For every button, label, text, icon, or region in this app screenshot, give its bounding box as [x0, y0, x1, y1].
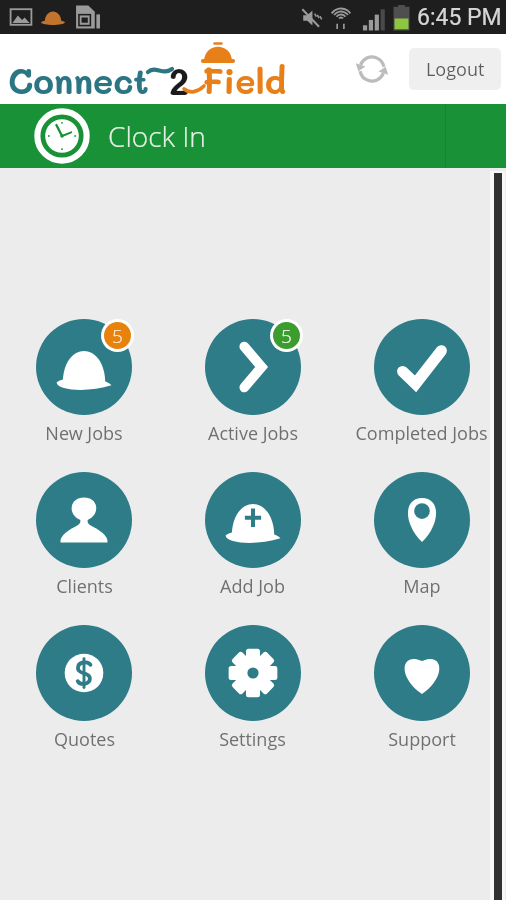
staticText: 6:45 PM: [417, 4, 502, 31]
staticText: Field: [202, 58, 287, 102]
button[interactable]: Add Job: [168, 472, 337, 599]
staticText: Clients: [56, 574, 113, 599]
staticText: Clock In: [108, 117, 206, 155]
staticText: Settings: [219, 727, 286, 752]
staticText: Active Jobs: [208, 421, 298, 446]
button[interactable]: Support: [337, 625, 506, 752]
staticText: Quotes: [54, 727, 115, 752]
button[interactable]: Settings: [168, 625, 337, 752]
staticText: Connect: [8, 58, 149, 102]
button[interactable]: Completed Jobs: [337, 319, 506, 446]
staticText: 5: [112, 323, 123, 349]
button[interactable]: Quotes: [0, 625, 168, 752]
button[interactable]: 5: [0, 319, 168, 446]
button[interactable]: Map: [337, 472, 506, 599]
staticText: Add Job: [220, 574, 285, 599]
staticText: 2: [169, 57, 190, 104]
staticText: Map: [403, 574, 441, 599]
button[interactable]: Logout: [409, 48, 501, 90]
button[interactable]: Clients: [0, 472, 168, 599]
button[interactable]: 5: [168, 319, 337, 446]
staticText: Completed Jobs: [355, 421, 488, 446]
staticText: New Jobs: [45, 421, 123, 446]
staticText: 5: [281, 323, 292, 349]
staticText: Logout: [426, 57, 485, 82]
button[interactable]: Clock In: [0, 104, 506, 168]
staticText: Support: [388, 727, 456, 752]
button[interactable]: Refresh: [348, 45, 396, 93]
